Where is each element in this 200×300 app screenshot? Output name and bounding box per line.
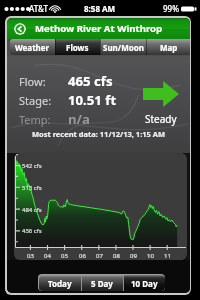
button[interactable]: Back [14, 23, 26, 35]
staticText: 513 cfs [22, 184, 42, 192]
staticText: 07 [96, 252, 103, 260]
staticText: AT&T [29, 3, 48, 14]
staticText: 10.51 ft [68, 91, 117, 109]
staticText: 8:58 AM [84, 3, 116, 14]
button[interactable]: Today [39, 275, 81, 291]
staticText: 11 [164, 252, 171, 260]
staticText: 10 Day [131, 278, 158, 289]
staticText: Flows [66, 42, 89, 53]
button[interactable]: Weather [10, 39, 55, 55]
staticText: Steady [145, 112, 177, 126]
button[interactable]: Flows [55, 39, 100, 55]
staticText: 09 [130, 252, 137, 260]
staticText: Weather [15, 42, 50, 53]
staticText: 484 cfs [22, 206, 42, 214]
staticText: 10 [147, 252, 154, 260]
staticText: Methow River At Winthrop [35, 22, 163, 35]
staticText: 99% [163, 3, 179, 14]
staticText: 456 cfs [22, 227, 42, 235]
staticText: Temp: [19, 112, 51, 127]
staticText: 08 [113, 252, 120, 260]
button[interactable]: 10 Day [123, 275, 165, 291]
button[interactable]: Map [146, 39, 190, 55]
button[interactable]: 5 Day [81, 275, 123, 291]
staticText: 542 cfs [22, 162, 42, 170]
staticText: 5 Day [91, 278, 113, 289]
staticText: Flow: [19, 74, 46, 89]
staticText: Sun/Moon [103, 42, 144, 53]
staticText: 03 [27, 252, 34, 260]
staticText: Most recent data: 11/12/13, 1:15 AM [7, 129, 190, 139]
staticText: 465 cfs [68, 72, 113, 90]
staticText: Map [160, 42, 178, 53]
staticText: Stage: [19, 93, 52, 108]
staticText: 05 [61, 252, 68, 260]
staticText: 04 [44, 252, 51, 260]
button[interactable]: Sun/Moon [100, 39, 146, 55]
staticText: n/a [68, 110, 90, 128]
staticText: Today [48, 278, 72, 289]
staticText: 06 [79, 252, 86, 260]
